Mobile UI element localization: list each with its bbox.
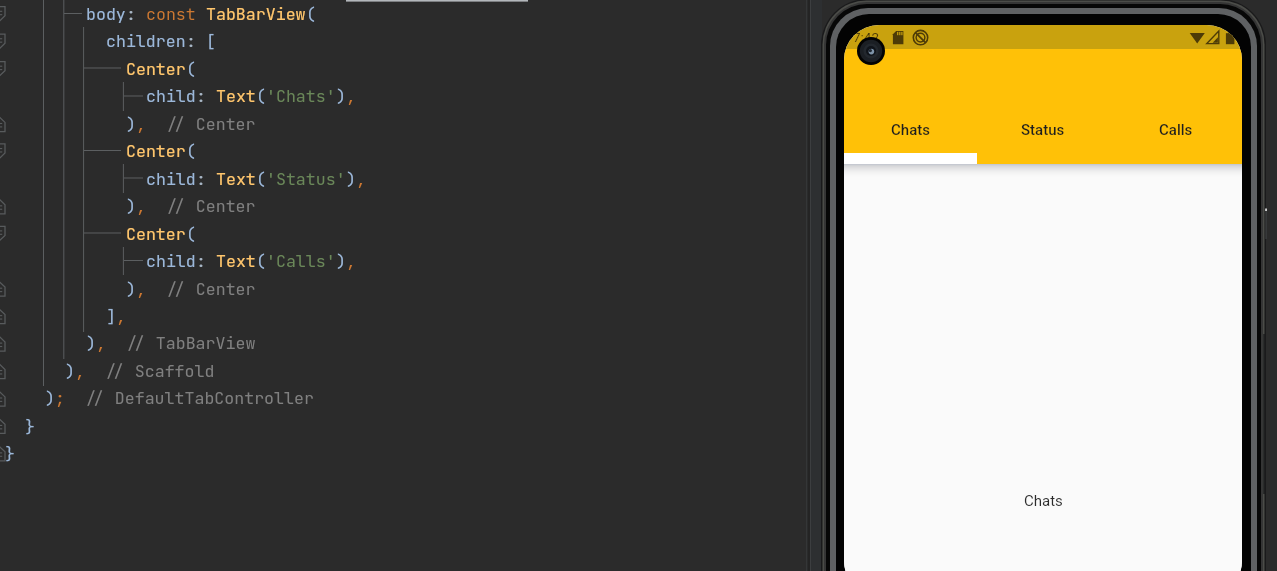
staticText: , <box>136 278 146 300</box>
staticText: : <box>126 3 146 25</box>
staticText: child <box>146 168 196 190</box>
staticText: ) <box>86 332 96 354</box>
staticText: , <box>136 113 146 135</box>
staticText: ( <box>186 58 196 80</box>
staticText: Text <box>216 168 256 190</box>
staticText: : <box>196 85 216 107</box>
staticText: Center <box>126 223 186 245</box>
staticText: } <box>25 415 35 437</box>
staticText: child <box>146 85 196 107</box>
button[interactable]: Status <box>976 49 1109 164</box>
staticText: ( <box>186 223 196 245</box>
staticText: } <box>5 442 15 464</box>
staticText: TabBarView <box>206 3 306 25</box>
staticText: ) <box>126 278 136 300</box>
staticText: ) <box>336 250 346 272</box>
staticText: ) <box>126 113 136 135</box>
staticText: ( <box>256 85 266 107</box>
staticText: ) <box>336 85 346 107</box>
button[interactable]: Chats <box>844 49 976 164</box>
staticText: ) <box>45 387 55 409</box>
staticText: // Scaffold <box>85 360 215 382</box>
staticText: , <box>346 250 356 272</box>
staticText: // Center <box>146 113 256 135</box>
staticText: ( <box>186 140 196 162</box>
staticText: , <box>346 85 356 107</box>
staticText: Text <box>216 85 256 107</box>
staticText: ( <box>306 3 316 25</box>
staticText: ( <box>256 168 266 190</box>
staticText: 'Status' <box>266 168 346 190</box>
staticText: : <box>186 30 206 52</box>
staticText: Chats <box>891 121 930 139</box>
staticText: Center <box>126 58 186 80</box>
staticText: , <box>75 360 85 382</box>
staticText: ) <box>126 195 136 217</box>
staticText: ) <box>65 360 75 382</box>
staticText: [ <box>206 30 216 52</box>
staticText: , <box>136 195 146 217</box>
staticText: 'Calls' <box>266 250 336 272</box>
staticText: children <box>106 30 186 52</box>
staticText: 'Chats' <box>266 85 336 107</box>
staticText: , <box>356 168 366 190</box>
staticText: ] <box>106 305 116 327</box>
staticText: , <box>116 305 126 327</box>
staticText: ; <box>55 387 65 409</box>
staticText: Center <box>126 140 186 162</box>
staticText: Text <box>216 250 256 272</box>
staticText: // Center <box>146 195 256 217</box>
staticText: const <box>146 3 196 25</box>
staticText: , <box>96 332 106 354</box>
staticText: child <box>146 250 196 272</box>
button[interactable]: Calls <box>1109 49 1242 164</box>
staticText: : <box>196 250 216 272</box>
staticText: ) <box>346 168 356 190</box>
staticText: // Center <box>146 278 256 300</box>
staticText: Status <box>1021 121 1065 139</box>
staticText: // DefaultTabController <box>65 387 314 409</box>
staticText: ( <box>256 250 266 272</box>
staticText: Chats <box>1024 492 1063 510</box>
staticText: Calls <box>1159 121 1193 139</box>
staticText: body <box>86 3 126 25</box>
staticText: 7:42 <box>853 29 880 45</box>
staticText: // TabBarView <box>106 332 256 354</box>
staticText: : <box>196 168 216 190</box>
